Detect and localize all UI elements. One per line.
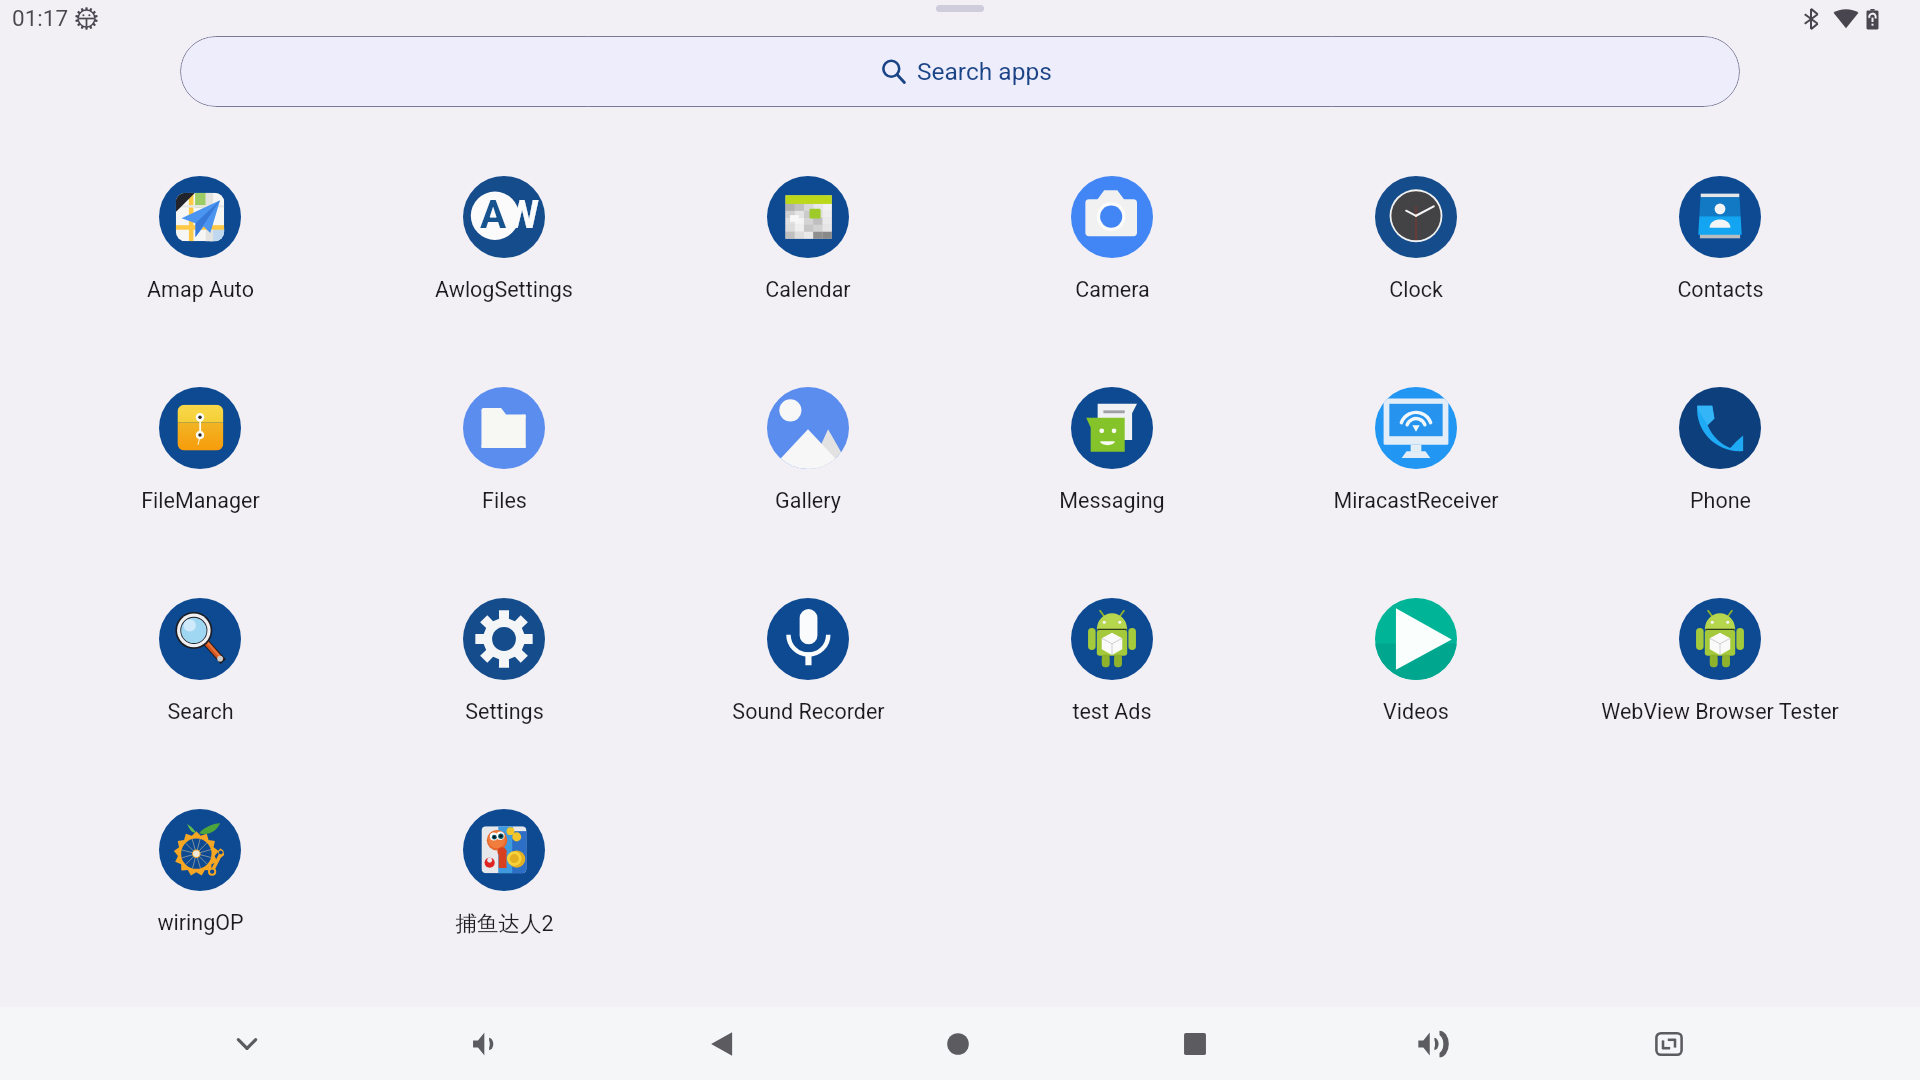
button[interactable]: Phone: [1568, 387, 1872, 513]
button[interactable]: Amap Auto: [48, 176, 352, 302]
staticText: MiracastReceiver: [1333, 488, 1499, 513]
button[interactable]: A: [352, 176, 656, 302]
button[interactable]: Sound Recorder: [656, 598, 960, 724]
staticText: FileManager: [141, 488, 260, 513]
button[interactable]: wiringOP: [48, 809, 352, 935]
button[interactable]: 捕鱼达人2: [352, 809, 656, 937]
staticText: Contacts: [1677, 277, 1764, 302]
staticText: Camera: [1075, 277, 1150, 302]
button[interactable]: MiracastReceiver: [1264, 387, 1568, 513]
button[interactable]: FileManager: [48, 387, 352, 513]
staticText: Gallery: [775, 488, 841, 513]
staticText: W: [505, 192, 540, 238]
staticText: wiringOP: [157, 910, 244, 935]
button[interactable]: collapse: [128, 1007, 365, 1080]
staticText: Messaging: [1059, 488, 1165, 513]
button[interactable]: Contacts: [1568, 176, 1872, 302]
button[interactable]: recents: [1076, 1007, 1313, 1080]
button[interactable]: back: [602, 1007, 839, 1080]
button[interactable]: home: [839, 1007, 1076, 1080]
button[interactable]: Settings: [352, 598, 656, 724]
staticText: Amap Auto: [147, 277, 254, 302]
button[interactable]: Calendar: [656, 176, 960, 302]
button[interactable]: Videos: [1264, 598, 1568, 724]
staticText: Phone: [1690, 488, 1751, 513]
button[interactable]: volume down: [365, 1007, 602, 1080]
button[interactable]: Files: [352, 387, 656, 513]
staticText: WebView Browser Tester: [1601, 699, 1839, 724]
button[interactable]: test Ads: [960, 598, 1264, 724]
staticText: Videos: [1383, 699, 1449, 724]
staticText: 01:17: [12, 5, 69, 31]
staticText: Calendar: [765, 277, 851, 302]
staticText: Search: [167, 699, 234, 724]
button[interactable]: Clock: [1264, 176, 1568, 302]
staticText: test Ads: [1072, 699, 1152, 724]
button[interactable]: Camera: [960, 176, 1264, 302]
staticText: 捕鱼达人2: [455, 910, 554, 937]
staticText: AwlogSettings: [435, 277, 573, 302]
staticText: Clock: [1389, 277, 1443, 302]
button[interactable]: volume up: [1313, 1007, 1550, 1080]
staticText: Settings: [465, 699, 544, 724]
button[interactable]: WebView Browser Tester: [1568, 598, 1872, 724]
button[interactable]: Search: [48, 598, 352, 724]
button[interactable]: fullscreen: [1550, 1007, 1787, 1080]
button[interactable]: Messaging: [960, 387, 1264, 513]
button[interactable]: Search apps: [180, 36, 1740, 107]
staticText: A: [480, 192, 507, 238]
staticText: Sound Recorder: [732, 699, 885, 724]
staticText: Search apps: [917, 57, 1052, 86]
staticText: Files: [482, 488, 527, 513]
button[interactable]: Gallery: [656, 387, 960, 513]
